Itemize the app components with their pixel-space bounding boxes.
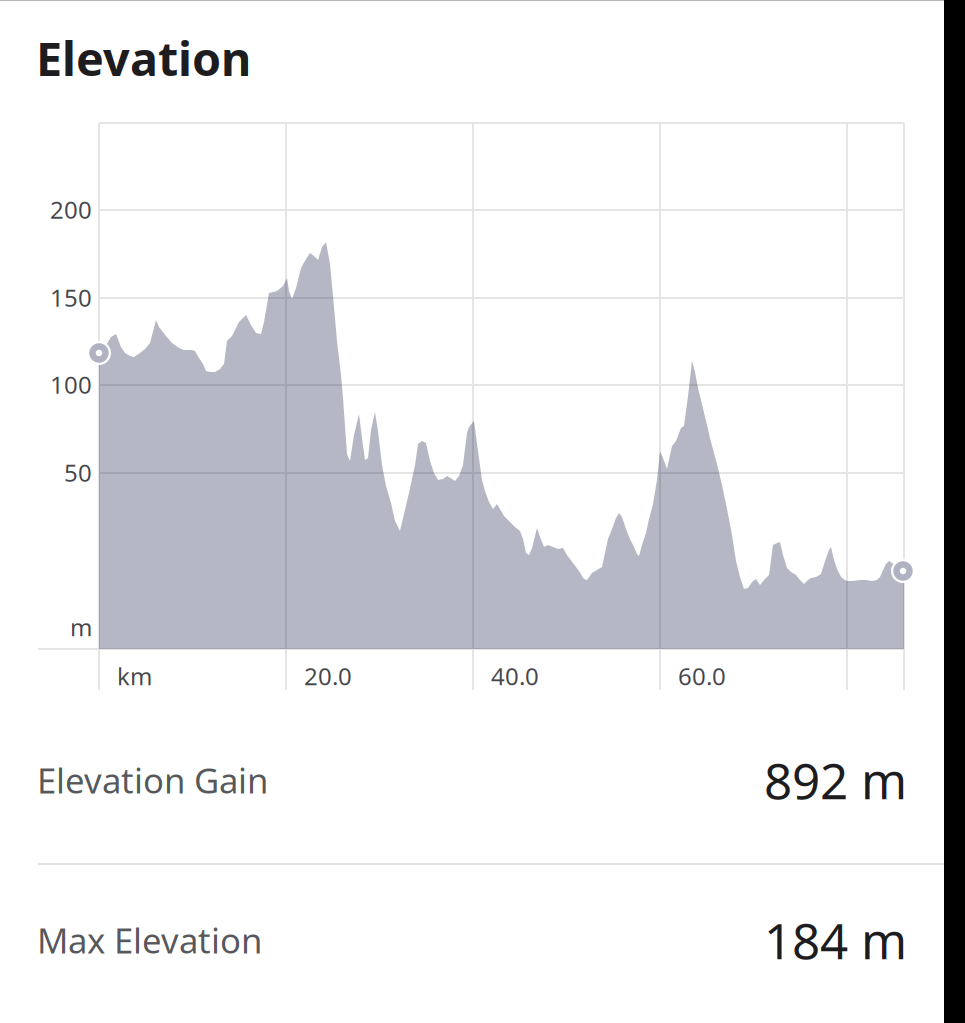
staticText: Max Elevation <box>37 917 262 963</box>
staticText: Elevation Gain <box>37 757 268 803</box>
staticText: 100 <box>50 368 92 400</box>
staticText: 892 m <box>764 747 907 813</box>
staticText: m <box>70 611 92 643</box>
staticText: 60.0 <box>678 660 726 692</box>
staticText: 50 <box>64 456 92 488</box>
staticText: 150 <box>50 281 92 313</box>
button[interactable]: Elevation Gain <box>0 716 944 844</box>
staticText: 200 <box>50 193 92 225</box>
staticText: 20.0 <box>304 660 352 692</box>
staticText: km <box>117 660 152 692</box>
staticText: 40.0 <box>491 660 539 692</box>
staticText: 184 m <box>764 907 907 973</box>
staticText: Elevation <box>36 27 251 89</box>
button[interactable]: Max Elevation <box>0 876 944 1004</box>
